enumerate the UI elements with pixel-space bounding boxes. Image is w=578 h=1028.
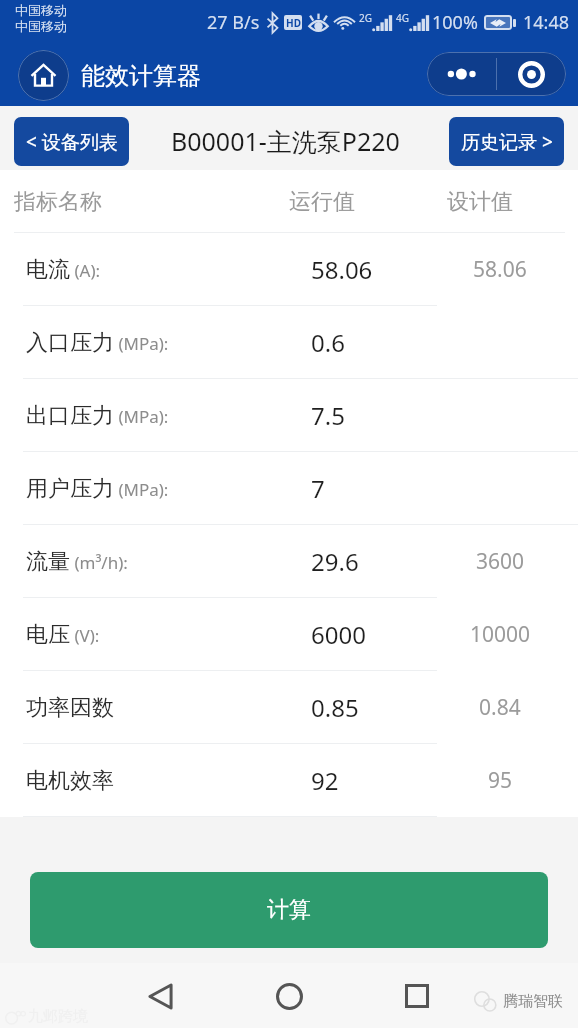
button[interactable]: 功率因数 [0,671,578,744]
staticText: HD [286,16,301,30]
button[interactable]: 出口压力 (MPa): [0,379,578,452]
staticText: 电压 (V): [26,621,100,649]
staticText: 电机效率 [26,767,114,795]
staticText: 100% [432,10,478,35]
staticText: 58.06 [311,253,373,286]
staticText: 92 [311,764,339,797]
staticText: 中国移动 [15,2,67,18]
staticText: 计算 [267,896,311,924]
staticText: 29.6 [311,545,359,578]
button[interactable]: < 设备列表 [14,117,129,166]
staticText: 流量 (m³/h): [26,548,128,576]
staticText: B00001-主洗泵P220 [171,124,400,158]
staticText: 95 [488,766,513,795]
staticText: 0.84 [479,693,521,722]
staticText: 3600 [476,547,525,576]
staticText: < 设备列表 [26,129,118,155]
button[interactable]: 用户压力 (MPa): [0,452,578,525]
staticText: 指标名称 [14,188,102,216]
staticText: 10000 [470,620,531,649]
button[interactable]: 电流 (A): [0,233,578,306]
staticText: 用户压力 (MPa): [26,475,169,503]
button[interactable]: Back [132,968,188,1024]
button[interactable]: 入口压力 (MPa): [0,306,578,379]
staticText: 0.85 [311,691,359,724]
staticText: 出口压力 (MPa): [26,402,169,430]
staticText: 腾瑞智联 [503,992,563,1011]
staticText: 运行值 [289,188,355,216]
button[interactable]: 电压 (V): [0,598,578,671]
staticText: 6000 [311,618,366,651]
staticText: 27 B/s [207,10,260,35]
staticText: 7.5 [311,399,345,432]
button[interactable]: 历史记录 > [449,117,564,166]
staticText: 电流 (A): [26,256,101,284]
button[interactable]: Home [18,50,69,101]
staticText: 历史记录 > [461,129,553,155]
button[interactable]: Home [261,968,317,1024]
button[interactable]: 计算 [30,872,548,948]
button[interactable]: More options [427,52,496,96]
staticText: 4G [396,11,409,25]
staticText: 7 [311,472,325,505]
staticText: 14:48 [523,10,570,35]
staticText: 0.6 [311,326,345,359]
staticText: 功率因数 [26,694,114,722]
staticText: 中国移动 [15,18,67,34]
staticText: 入口压力 (MPa): [26,329,169,357]
button[interactable]: 电机效率 [0,744,578,817]
button[interactable]: 流量 (m³/h): [0,525,578,598]
staticText: 能效计算器 [81,61,201,91]
button[interactable]: Close mini program [497,52,566,96]
button[interactable]: Recent apps [389,968,445,1024]
staticText: 58.06 [473,255,527,284]
staticText: 设计值 [447,188,513,216]
staticText: 2G [359,11,372,25]
